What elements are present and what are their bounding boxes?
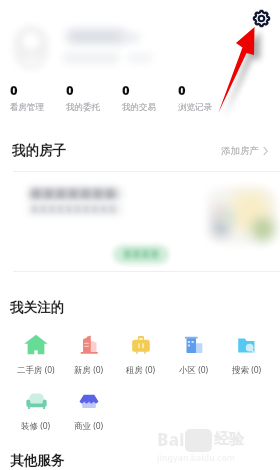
button[interactable]: 租房 (0)	[114, 332, 167, 376]
staticText: Bai	[157, 428, 185, 451]
staticText: 小区 (0)	[179, 364, 209, 376]
button[interactable]: 二手房 (0)	[9, 332, 62, 376]
staticText: 其他服务	[10, 452, 64, 469]
button[interactable]: 搜索 (0)	[220, 332, 273, 376]
staticText: 租房 (0)	[126, 364, 156, 376]
staticText: 新房 (0)	[74, 364, 104, 376]
staticText: 添加房产	[221, 145, 259, 157]
button[interactable]: 商业 (0)	[62, 388, 115, 432]
button[interactable]: 0	[10, 81, 56, 113]
button[interactable]	[113, 245, 170, 263]
button[interactable]: 新房 (0)	[62, 332, 115, 376]
staticText: 搜索 (0)	[232, 364, 262, 376]
staticText: 二手房 (0)	[17, 364, 55, 376]
staticText: 我关注的	[10, 299, 64, 316]
button[interactable]: 小区 (0)	[167, 332, 220, 376]
button[interactable]: 0	[122, 81, 168, 113]
staticText: 看房管理	[10, 102, 44, 113]
staticText: 经验	[214, 430, 244, 449]
staticText: 我的房子	[12, 142, 66, 159]
staticText: 0	[122, 81, 130, 99]
staticText: 装修 (0)	[21, 420, 51, 432]
staticText: 商业 (0)	[74, 420, 104, 432]
staticText: 我的委托	[66, 102, 100, 113]
staticText: jingyan.baidu.com	[157, 452, 236, 464]
staticText: 0	[10, 81, 18, 99]
staticText: 0	[178, 81, 186, 99]
staticText: 我的交易	[122, 102, 156, 113]
staticText: 0	[66, 81, 74, 99]
staticText: 浏览记录	[178, 102, 212, 113]
button[interactable]: Settings	[250, 7, 272, 29]
button[interactable]: 0	[66, 81, 112, 113]
button[interactable]: 装修 (0)	[9, 388, 62, 432]
button[interactable]	[0, 172, 280, 271]
button[interactable]: 0	[178, 81, 224, 113]
button[interactable]: 添加房产	[221, 145, 268, 157]
